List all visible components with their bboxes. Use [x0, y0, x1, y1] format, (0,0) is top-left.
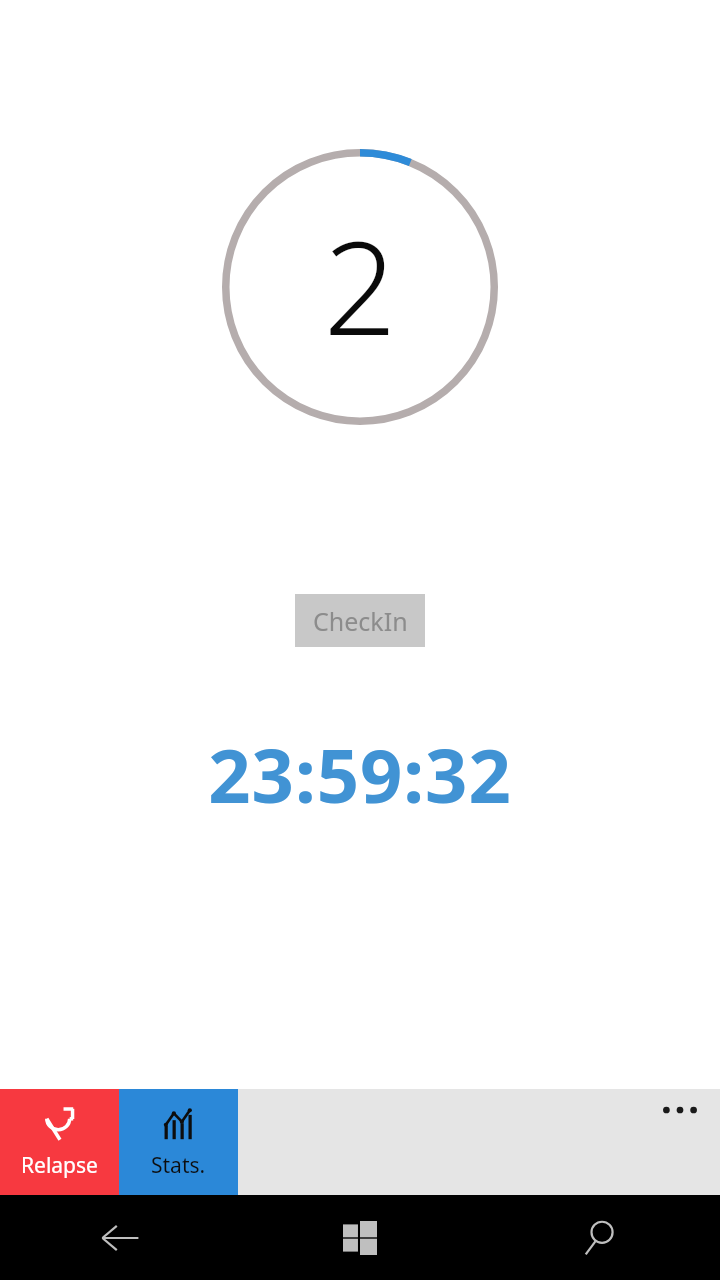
button[interactable]: Stats.	[119, 1089, 238, 1195]
button[interactable]: Home	[240, 1195, 480, 1280]
button[interactable]: Search	[480, 1195, 720, 1280]
button[interactable]: Relapse	[0, 1089, 119, 1195]
staticText: Stats.	[151, 1151, 206, 1180]
button[interactable]: Back	[0, 1195, 240, 1280]
staticText: 23:59:32	[208, 724, 512, 825]
staticText: CheckIn	[313, 604, 408, 638]
button[interactable]: CheckIn	[295, 594, 425, 647]
button[interactable]: More options	[238, 1089, 720, 1195]
staticText: Relapse	[21, 1151, 98, 1180]
button[interactable]: Day progress ring	[222, 149, 498, 425]
staticText: 2	[323, 198, 397, 372]
